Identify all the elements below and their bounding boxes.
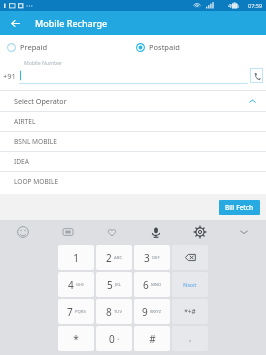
staticText: LOOP MOBILE	[14, 177, 59, 186]
button[interactable]	[19, 67, 248, 84]
staticText: Mobile Recharge	[35, 17, 108, 29]
button[interactable]: Back	[7, 15, 24, 32]
button[interactable]: Next	[172, 272, 208, 297]
staticText: IDEA	[14, 157, 29, 166]
button[interactable]: Settings	[178, 220, 222, 243]
staticText: Mobile Number	[24, 59, 63, 66]
staticText: *	[73, 332, 79, 346]
staticText: Select Operator	[14, 96, 67, 106]
staticText: 9	[142, 305, 148, 319]
staticText: 3	[144, 251, 150, 265]
staticText: JKL	[115, 282, 121, 288]
staticText: 2	[106, 251, 112, 265]
staticText: *+#	[184, 307, 196, 316]
staticText: 4	[68, 278, 74, 292]
staticText: DEF	[152, 255, 160, 261]
button[interactable]: #	[134, 326, 170, 351]
button[interactable]: 4	[58, 272, 94, 297]
staticText: PQRS	[75, 309, 86, 315]
button[interactable]: AIRTEL	[0, 112, 266, 131]
button[interactable]: Backspace	[172, 245, 208, 270]
button[interactable]: *+#	[172, 299, 208, 324]
staticText: Bill Fetch	[225, 203, 254, 212]
staticText: 8	[106, 305, 112, 319]
button[interactable]: IDEA	[0, 152, 266, 171]
button[interactable]: Pick contact	[250, 68, 263, 83]
staticText: ,	[189, 334, 191, 343]
staticText: +91	[3, 71, 16, 81]
button[interactable]: 5	[96, 272, 132, 297]
button[interactable]: 2	[96, 245, 132, 270]
button[interactable]: 3	[134, 245, 170, 270]
button[interactable]: Select Operator	[0, 91, 266, 111]
button[interactable]: 7	[58, 299, 94, 324]
button[interactable]: 9	[134, 299, 170, 324]
staticText: MNO	[151, 282, 162, 288]
staticText: AIRTEL	[14, 117, 36, 126]
button[interactable]: Bill Fetch	[219, 200, 260, 215]
staticText: 5	[107, 278, 113, 292]
button[interactable]: *	[58, 326, 94, 351]
button[interactable]: 0	[96, 326, 132, 351]
staticText: 49%	[228, 2, 239, 9]
button[interactable]: Stickers	[90, 220, 134, 243]
button[interactable]: 6	[134, 272, 170, 297]
button[interactable]: Emoji	[0, 220, 45, 243]
staticText: 0	[109, 332, 115, 346]
button[interactable]: GIF	[45, 220, 90, 243]
staticText: Postpaid	[149, 42, 180, 52]
button[interactable]: Postpaid	[136, 38, 266, 56]
staticText: WXYZ	[150, 309, 162, 315]
staticText: GHI	[76, 282, 84, 288]
staticText: 6	[143, 278, 149, 292]
staticText: Next	[183, 281, 197, 289]
staticText: +	[117, 336, 120, 342]
staticText: ABC	[114, 255, 123, 261]
button[interactable]: Prepaid	[7, 38, 133, 56]
staticText: Prepaid	[20, 42, 48, 52]
staticText: #	[149, 332, 156, 346]
button[interactable]: LOOP MOBILE	[0, 172, 266, 191]
staticText: 07:59	[248, 2, 263, 9]
staticText: 1	[73, 251, 79, 265]
button[interactable]: Voice input	[134, 220, 178, 243]
staticText: 7	[67, 305, 73, 319]
button[interactable]: BSNL MOBILE	[0, 132, 266, 151]
staticText: TUV	[114, 309, 122, 315]
button[interactable]: 8	[96, 299, 132, 324]
staticText: BSNL MOBILE	[14, 137, 57, 146]
button[interactable]: 1	[58, 245, 94, 270]
button[interactable]: Collapse	[222, 220, 266, 243]
